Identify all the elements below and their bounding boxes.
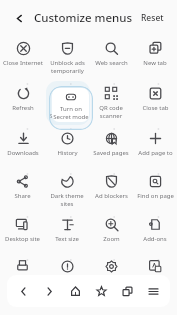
button[interactable]: Home (62, 276, 88, 306)
button[interactable]: Desktop site (4, 216, 41, 243)
staticText: Close Internet (3, 59, 43, 67)
staticText: New tab (143, 59, 167, 67)
button[interactable]: Add-ons (142, 216, 168, 243)
button[interactable] (58, 258, 77, 285)
staticText: Dark theme sites (50, 192, 84, 208)
button[interactable] (13, 258, 32, 285)
button[interactable]: Menu (140, 276, 166, 306)
staticText: QR code scanner (99, 104, 123, 120)
staticText: Customize menus (34, 10, 133, 26)
button[interactable]: New tab (142, 40, 168, 67)
staticText: Text size (55, 235, 79, 243)
button[interactable]: Add page to (137, 130, 174, 157)
button[interactable]: Turn on Secret mode (52, 88, 89, 122)
button[interactable]: Dark theme sites (49, 173, 85, 208)
staticText: Turn on Secret mode (49, 104, 85, 120)
button[interactable]: Text size (54, 216, 80, 243)
button[interactable] (146, 258, 165, 285)
button[interactable]: Reset (137, 8, 168, 28)
button[interactable]: Find on page (136, 173, 175, 200)
button[interactable]: Refresh (11, 85, 35, 112)
staticText: Desktop site (5, 235, 40, 243)
button[interactable]: Saved pages (92, 130, 130, 157)
staticText: Add page to (138, 149, 173, 157)
button[interactable]: Back (9, 8, 29, 28)
button[interactable]: Web search (94, 40, 129, 67)
staticText: Web search (95, 59, 128, 67)
button[interactable]: Bookmarks (88, 276, 114, 306)
staticText: Ad blockers (95, 192, 128, 200)
button[interactable]: Downloads (6, 130, 40, 157)
button[interactable]: Unblock ads temporarily (49, 40, 86, 75)
staticText: Zoom (103, 235, 120, 243)
button[interactable]: History (56, 130, 79, 157)
staticText: Find on page (137, 192, 174, 200)
button[interactable]: Close tab (141, 85, 170, 112)
button[interactable]: Share (13, 173, 32, 200)
staticText: Unblock ads temporarily (50, 59, 85, 75)
staticText: History (57, 149, 78, 157)
button[interactable]: QR code scanner (98, 85, 124, 120)
button[interactable]: Tabs (114, 276, 140, 306)
button[interactable]: Back (11, 276, 36, 306)
staticText: Turn on Secret mode (53, 105, 89, 120)
staticText: Downloads (7, 149, 39, 157)
button[interactable]: Turn on Secret mode (48, 85, 86, 120)
button[interactable]: Zoom (102, 216, 121, 243)
staticText: Share (14, 192, 31, 200)
staticText: Saved pages (93, 149, 129, 157)
staticText: Close tab (142, 104, 169, 112)
button[interactable] (102, 258, 121, 285)
button[interactable]: Ad blockers (94, 173, 129, 200)
staticText: Refresh (12, 104, 34, 112)
staticText: Add-ons (143, 235, 167, 243)
button[interactable]: Close Internet (2, 40, 44, 67)
staticText: Reset (141, 12, 164, 24)
button[interactable]: Forward (36, 276, 62, 306)
